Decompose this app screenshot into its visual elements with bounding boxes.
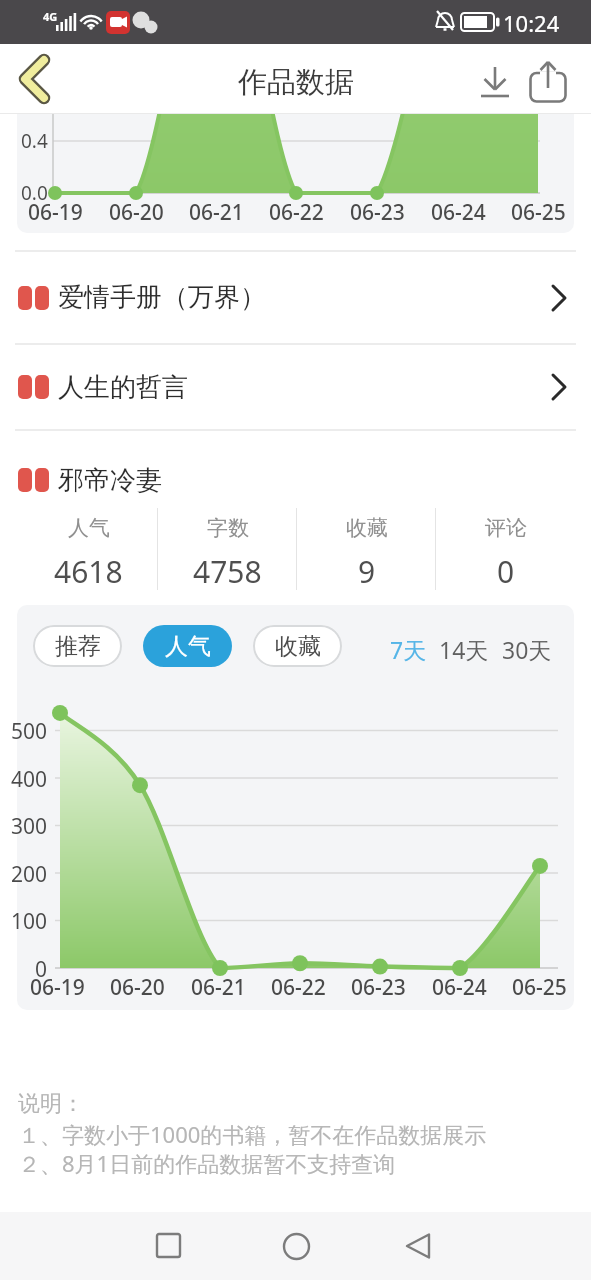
staticText: 06-23 (350, 198, 405, 224)
button[interactable]: 邪帝冷妻 (0, 448, 591, 512)
staticText: 06-21 (191, 973, 246, 999)
staticText: 06-24 (432, 973, 487, 999)
button[interactable]: 人生的哲言 (0, 345, 591, 429)
staticText: 收藏 (275, 632, 321, 661)
staticText: 推荐 (55, 632, 101, 661)
staticText: 10:24 (503, 8, 560, 38)
button[interactable]: 人气 (143, 625, 232, 667)
staticText: 06-22 (271, 973, 326, 999)
staticText: 4618 (54, 551, 123, 591)
staticText: 400 (11, 765, 48, 791)
button[interactable] (394, 1222, 442, 1270)
staticText: 06-25 (512, 973, 567, 999)
button[interactable]: 推荐 (33, 625, 122, 667)
staticText: 4G (43, 9, 58, 24)
staticText: 字数 (207, 515, 249, 541)
staticText: 邪帝冷妻 (58, 464, 162, 497)
button[interactable] (8, 50, 60, 108)
button[interactable]: 30天 (497, 632, 557, 666)
staticText: 06-25 (511, 198, 566, 224)
staticText: 06-22 (269, 198, 324, 224)
staticText: 06-20 (110, 973, 165, 999)
staticText: 200 (11, 860, 48, 886)
staticText: 9 (358, 551, 376, 591)
staticText: 人气 (68, 515, 110, 541)
staticText: 14天 (439, 634, 489, 665)
staticText: 06-23 (351, 973, 406, 999)
staticText: 06-19 (28, 198, 83, 224)
staticText: ２、8月1日前的作品数据暂不支持查询 (18, 1148, 396, 1178)
staticText: 0 (35, 955, 48, 981)
button[interactable]: 14天 (434, 632, 494, 666)
staticText: 0 (497, 551, 515, 591)
staticText: 4758 (193, 551, 262, 591)
button[interactable] (145, 1222, 193, 1270)
staticText: 100 (11, 907, 48, 933)
staticText: 500 (11, 717, 48, 743)
staticText: 06-20 (109, 198, 164, 224)
button[interactable] (524, 56, 572, 108)
staticText: 作品数据 (238, 64, 354, 100)
staticText: 06-19 (30, 973, 85, 999)
staticText: 说明： (18, 1090, 84, 1118)
staticText: 人生的哲言 (58, 371, 188, 404)
staticText: 人气 (165, 632, 211, 661)
button[interactable] (471, 56, 519, 108)
staticText: １、字数小于1000的书籍，暂不在作品数据展示 (18, 1119, 487, 1149)
staticText: 7天 (390, 634, 427, 665)
staticText: 爱情手册（万界） (58, 281, 266, 314)
staticText: 收藏 (346, 515, 388, 541)
button[interactable]: 收藏 (253, 625, 342, 667)
staticText: 30天 (502, 634, 552, 665)
button[interactable]: 爱情手册（万界） (0, 252, 591, 343)
staticText: 300 (11, 812, 48, 838)
staticText: 评论 (485, 515, 527, 541)
staticText: 0.0 (21, 180, 48, 206)
staticText: 0.4 (21, 128, 48, 154)
button[interactable]: 7天 (385, 632, 431, 666)
staticText: 06-21 (189, 198, 244, 224)
button[interactable] (272, 1222, 320, 1270)
staticText: 06-24 (431, 198, 486, 224)
